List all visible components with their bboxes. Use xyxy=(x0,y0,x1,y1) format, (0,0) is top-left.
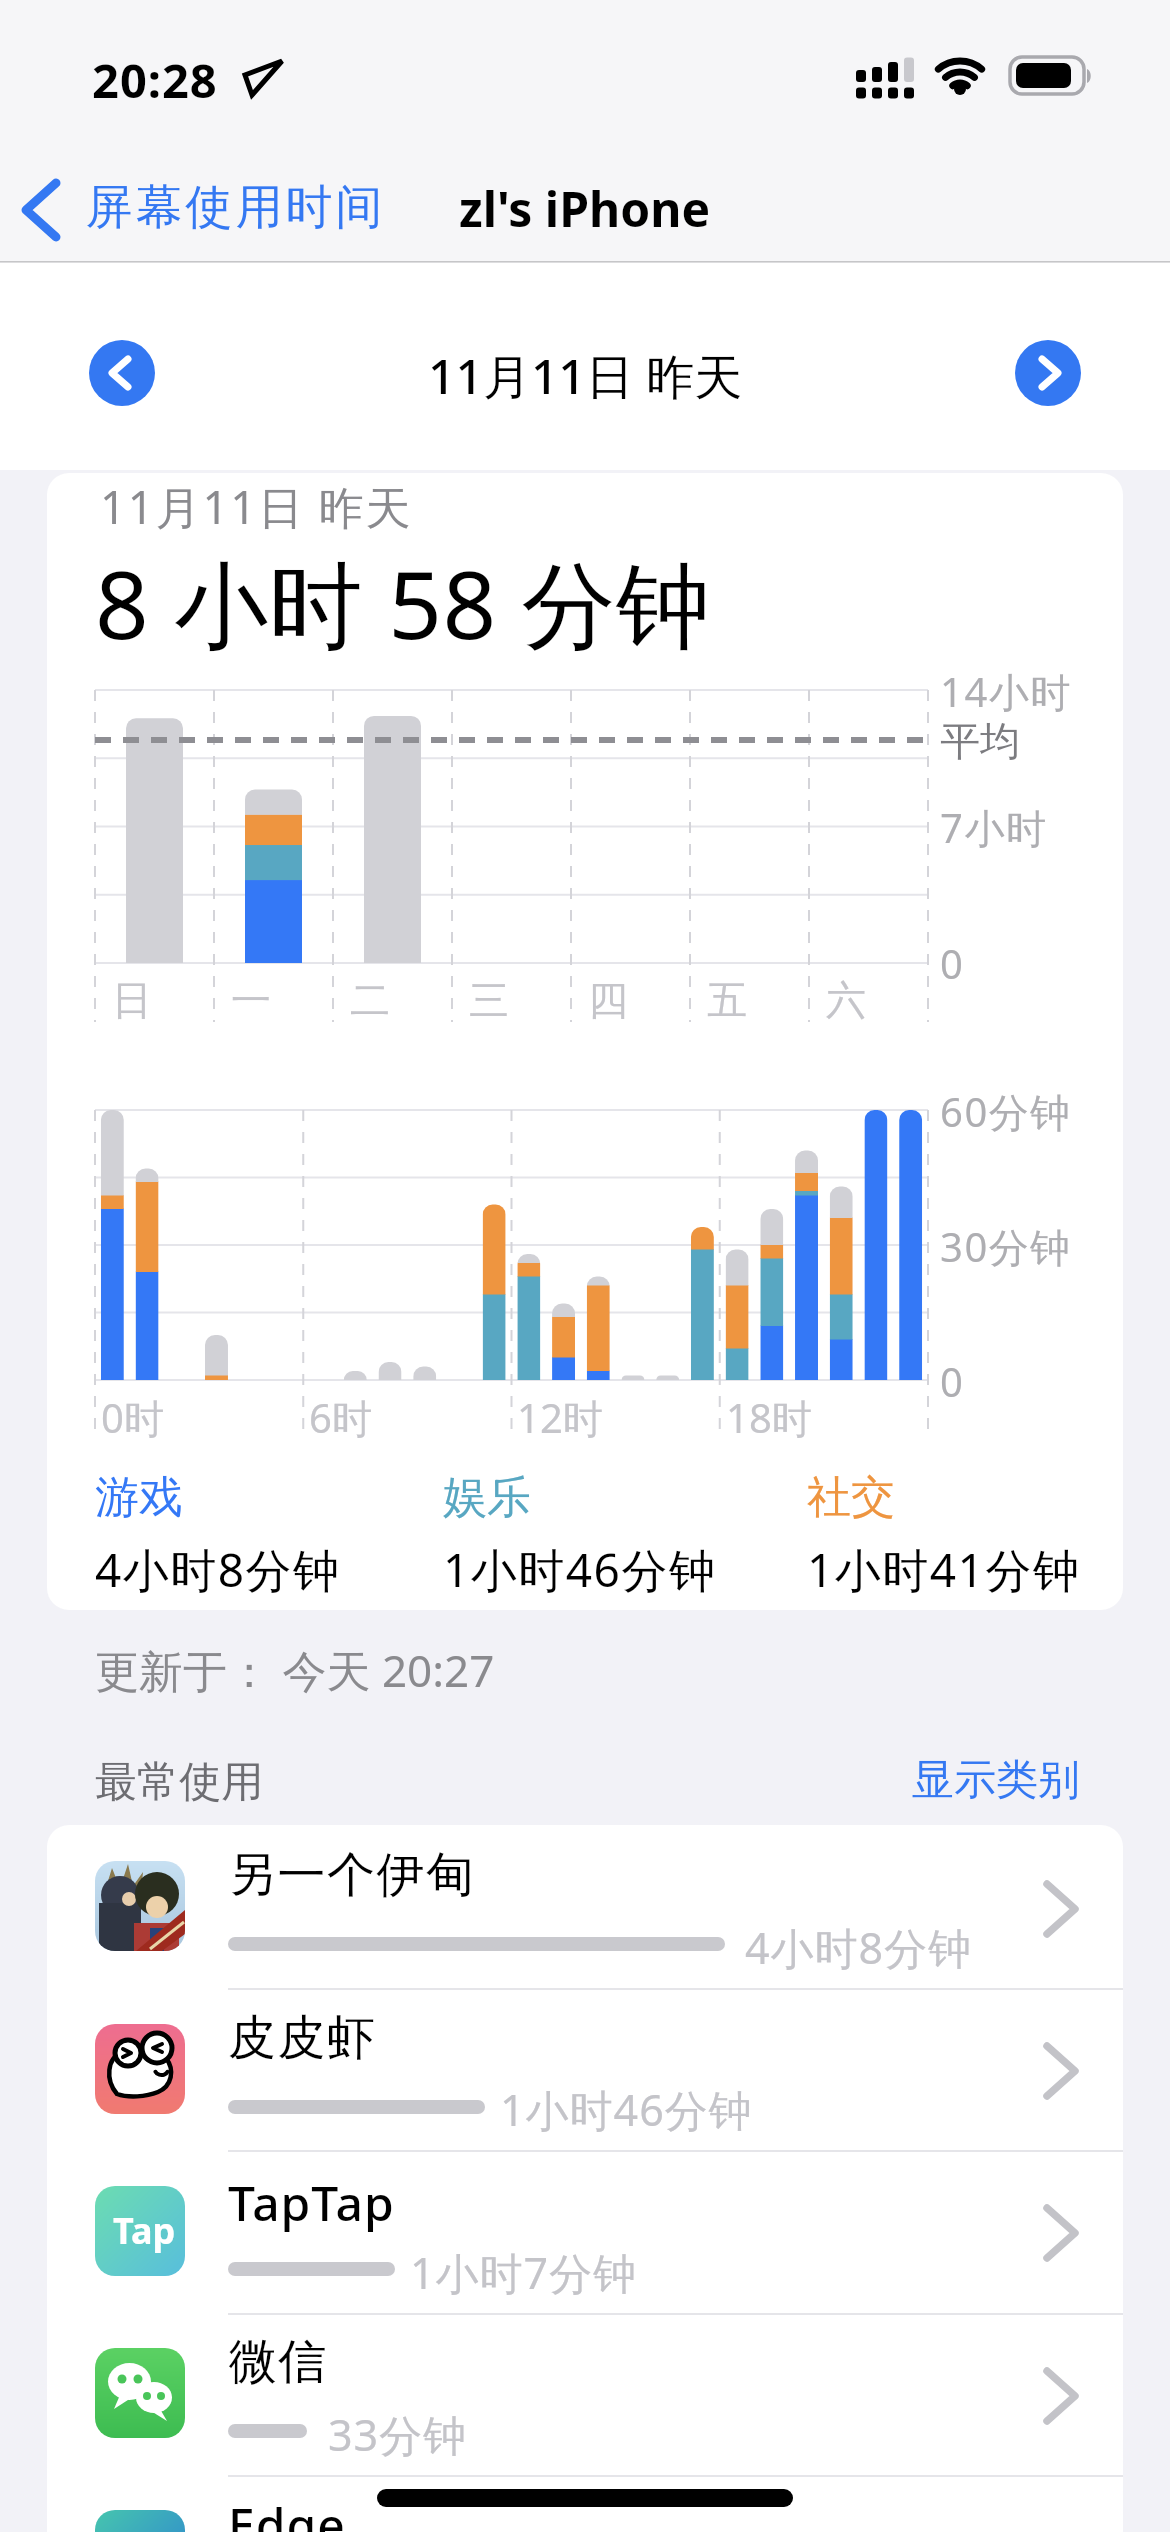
staticText: Edge xyxy=(228,2492,346,2532)
staticText: TapTap xyxy=(228,2170,395,2235)
staticText: 皮皮虾 xyxy=(228,2008,377,2068)
staticText: 屏幕使用时间 xyxy=(84,178,384,237)
staticText: 4小时8分钟 xyxy=(745,1918,973,1977)
staticText: 8 小时 58 分钟 xyxy=(95,539,711,667)
button[interactable] xyxy=(47,1988,1123,2150)
staticText: 0 xyxy=(940,1354,963,1408)
staticText: 6时 xyxy=(309,1390,372,1445)
staticText: 1小时46分钟 xyxy=(500,2080,753,2139)
staticText: 30分钟 xyxy=(940,1219,1072,1274)
staticText: 日 xyxy=(112,975,152,1025)
staticText: 四 xyxy=(588,975,628,1025)
staticText: 11月11日 昨天 xyxy=(100,476,413,537)
staticText: 游戏 xyxy=(95,1470,183,1525)
button[interactable]: 显示类别 xyxy=(890,1748,1080,1812)
button[interactable] xyxy=(1015,340,1081,406)
staticText: zl's iPhone xyxy=(459,176,711,241)
staticText: 60分钟 xyxy=(940,1084,1072,1139)
staticText: Tap xyxy=(113,2206,176,2255)
button[interactable] xyxy=(47,2314,1123,2476)
button[interactable] xyxy=(20,165,410,260)
button[interactable] xyxy=(47,1825,1123,1987)
staticText: 12时 xyxy=(517,1390,603,1445)
staticText: 4小时8分钟 xyxy=(95,1538,341,1601)
staticText: 0 xyxy=(940,936,963,990)
button[interactable] xyxy=(89,340,155,406)
staticText: 另一个伊甸 xyxy=(228,1845,476,1905)
staticText: 0时 xyxy=(101,1390,164,1445)
button[interactable] xyxy=(47,2151,1123,2313)
staticText: 11月11日 昨天 xyxy=(428,343,743,409)
staticText: 1小时7分钟 xyxy=(410,2243,638,2302)
staticText: 三 xyxy=(469,975,509,1025)
staticText: 14小时 xyxy=(940,664,1072,719)
staticText: 20:28 xyxy=(92,48,218,112)
staticText: 最常使用 xyxy=(95,1756,263,1809)
staticText: 1小时46分钟 xyxy=(443,1538,717,1601)
staticText: 二 xyxy=(350,975,390,1025)
staticText: 18时 xyxy=(726,1390,812,1445)
button[interactable] xyxy=(47,2477,1123,2532)
staticText: 娱乐 xyxy=(443,1470,531,1525)
staticText: 7小时 xyxy=(940,800,1048,855)
staticText: 微信 xyxy=(228,2332,327,2392)
staticText: 六 xyxy=(826,975,866,1025)
staticText: 平均 xyxy=(940,716,1020,766)
staticText: 社交 xyxy=(807,1470,895,1525)
staticText: 1小时41分钟 xyxy=(807,1538,1081,1601)
staticText: 更新于： 今天 20:27 xyxy=(95,1640,495,1700)
staticText: 33分钟 xyxy=(328,2405,468,2464)
staticText: 五 xyxy=(707,975,747,1025)
staticText: 一 xyxy=(231,975,271,1025)
staticText: 显示类别 xyxy=(912,1754,1080,1807)
